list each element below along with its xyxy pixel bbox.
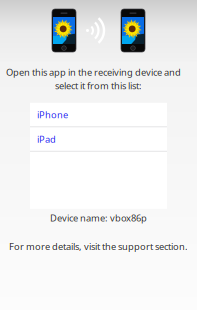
staticText: iPhone [37,108,68,121]
button[interactable]: iPhone [30,103,167,126]
staticText: iPad [37,133,56,145]
staticText: Device name: vbox86p [50,212,147,224]
staticText: select it from this list: [55,79,142,92]
staticText: Open this app in the receiving device an… [6,66,181,78]
button[interactable]: iPad [30,127,167,151]
staticText: For more details, visit the support sect… [9,240,188,253]
